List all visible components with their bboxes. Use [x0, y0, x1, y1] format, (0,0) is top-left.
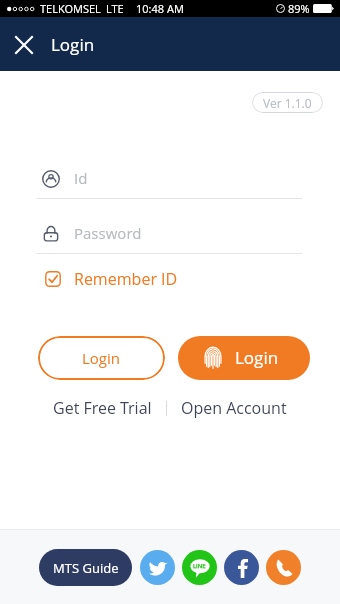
- staticText: 89%: [288, 1, 310, 16]
- staticText: Password: [74, 223, 142, 243]
- button[interactable]: Call: [266, 550, 301, 585]
- staticText: Id: [74, 168, 88, 188]
- staticText: LINE: [193, 562, 206, 570]
- button[interactable]: MTS Guide: [39, 549, 132, 586]
- button[interactable]: Close: [7, 28, 40, 61]
- staticText: Login: [82, 348, 121, 368]
- staticText: Remember ID: [74, 268, 178, 290]
- button[interactable]: LINE: [182, 550, 217, 585]
- staticText: LTE: [106, 1, 124, 16]
- staticText: 10:48 AM: [136, 1, 184, 16]
- staticText: TELKOMSEL: [40, 1, 101, 16]
- button[interactable]: Open Account: [181, 397, 287, 419]
- button[interactable]: Ver 1.1.0: [252, 92, 323, 113]
- button[interactable]: Remember ID: [45, 268, 178, 290]
- button[interactable]: Login: [178, 336, 310, 380]
- button[interactable]: Get Free Trial: [53, 397, 152, 419]
- staticText: Ver 1.1.0: [263, 95, 312, 111]
- button[interactable]: Twitter: [140, 550, 175, 585]
- staticText: Login: [235, 346, 279, 369]
- button[interactable]: Facebook: [224, 550, 259, 585]
- button[interactable]: Login: [38, 336, 165, 380]
- staticText: Login: [51, 33, 95, 56]
- staticText: MTS Guide: [53, 559, 119, 577]
